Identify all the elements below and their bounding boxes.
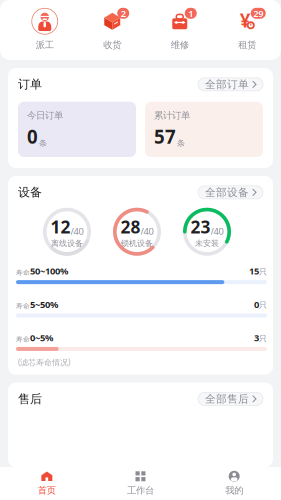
- staticText: 29: [253, 7, 263, 19]
- staticText: 0: [254, 298, 259, 310]
- staticText: 锁机设备: [121, 238, 153, 248]
- button[interactable]: 2: [78, 7, 146, 51]
- button[interactable]: 首页: [0, 467, 94, 500]
- staticText: 收货: [103, 39, 121, 51]
- button[interactable]: 我的: [187, 467, 281, 500]
- button[interactable]: 工作台: [94, 467, 187, 500]
- staticText: (滤芯寿命情况): [18, 357, 70, 367]
- staticText: 租赁: [238, 39, 256, 51]
- staticText: 离线设备: [51, 238, 83, 248]
- staticText: 只: [259, 300, 267, 310]
- staticText: 条: [39, 138, 47, 148]
- staticText: 设备: [18, 185, 42, 200]
- staticText: /40: [70, 225, 83, 237]
- button[interactable]: 派工: [11, 7, 78, 51]
- button[interactable]: 全部售后: [198, 392, 263, 405]
- staticText: /40: [140, 225, 153, 237]
- staticText: 1: [188, 7, 193, 19]
- staticText: 派工: [36, 39, 54, 51]
- staticText: 3: [254, 331, 259, 344]
- staticText: 订单: [18, 77, 42, 92]
- staticText: 全部设备: [205, 186, 249, 199]
- staticText: 工作台: [127, 485, 154, 496]
- staticText: 全部订单: [205, 78, 249, 91]
- button[interactable]: 1: [146, 7, 213, 51]
- button[interactable]: 全部设备: [198, 186, 263, 199]
- staticText: 5~50%: [30, 298, 58, 310]
- staticText: 只: [259, 267, 267, 277]
- staticText: 0~5%: [30, 331, 53, 344]
- staticText: 累计订单: [154, 110, 190, 121]
- staticText: 15: [249, 265, 259, 277]
- staticText: 50~100%: [30, 265, 68, 277]
- button[interactable]: 全部订单: [198, 78, 263, 91]
- staticText: 只: [259, 334, 267, 343]
- staticText: 57: [154, 124, 176, 149]
- staticText: 我的: [225, 485, 243, 496]
- staticText: 今日订单: [27, 110, 63, 121]
- staticText: 2: [121, 7, 126, 19]
- staticText: 寿命: [16, 268, 30, 277]
- staticText: 23: [190, 215, 210, 238]
- staticText: 维修: [171, 39, 189, 51]
- staticText: 全部售后: [205, 392, 249, 405]
- button[interactable]: ¥: [213, 7, 281, 51]
- staticText: 条: [177, 138, 185, 148]
- staticText: 寿命: [16, 302, 30, 310]
- staticText: ¥: [240, 8, 251, 33]
- staticText: 未安装: [195, 238, 219, 248]
- staticText: 寿命: [16, 335, 30, 343]
- staticText: 售后: [18, 391, 42, 406]
- staticText: 0: [27, 124, 38, 149]
- staticText: 28: [120, 215, 140, 238]
- staticText: /40: [210, 225, 223, 237]
- staticText: 首页: [38, 485, 56, 496]
- staticText: 12: [50, 215, 70, 238]
